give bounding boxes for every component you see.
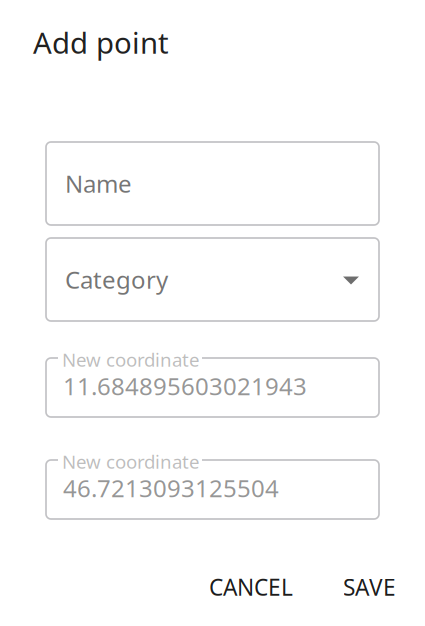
staticText: CANCEL xyxy=(209,572,293,602)
staticText: New coordinate xyxy=(62,449,200,474)
staticText: Name xyxy=(65,168,132,199)
staticText: New coordinate xyxy=(62,347,200,372)
staticText: 11.684895603021943 xyxy=(63,370,307,402)
staticText: 46.7213093125504 xyxy=(63,472,279,504)
button[interactable]: SAVE xyxy=(331,564,408,610)
button[interactable]: CANCEL xyxy=(197,564,305,610)
staticText: Category xyxy=(65,264,168,295)
staticText: SAVE xyxy=(343,572,396,602)
button[interactable]: New coordinate xyxy=(46,460,379,519)
button[interactable]: Name xyxy=(46,142,379,225)
staticText: Add point xyxy=(33,23,169,62)
button[interactable]: Category xyxy=(46,238,379,321)
button[interactable]: New coordinate xyxy=(46,358,379,417)
